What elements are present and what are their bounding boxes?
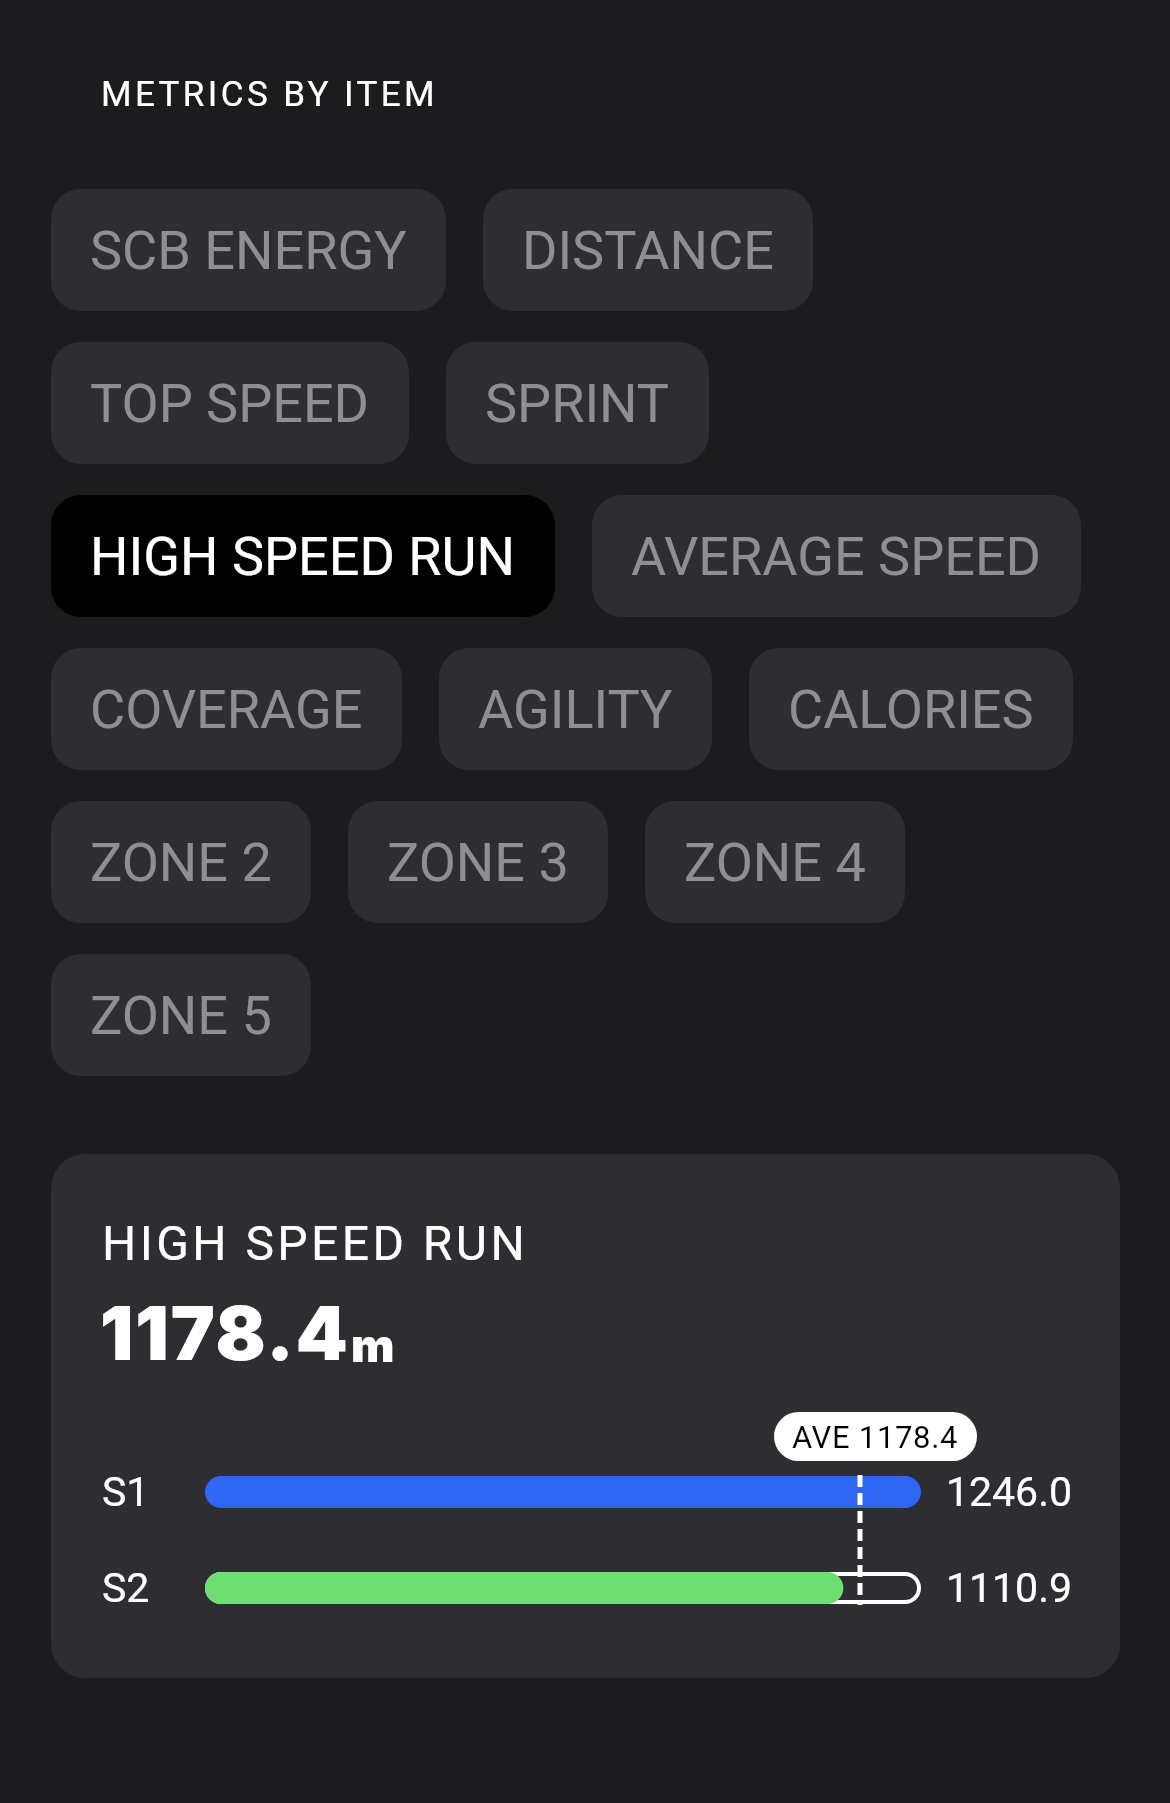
staticText: ZONE 5 <box>90 984 272 1047</box>
button[interactable]: AVE 1178.4 <box>774 1412 977 1461</box>
staticText: SCB ENERGY <box>90 219 407 282</box>
button[interactable]: SPRINT <box>446 342 709 464</box>
button[interactable]: COVERAGE <box>51 648 402 770</box>
button[interactable]: ZONE 3 <box>348 801 608 923</box>
staticText: AVE 1178.4 <box>792 1419 959 1455</box>
button[interactable]: AVERAGE SPEED <box>592 495 1081 617</box>
staticText: ZONE 3 <box>387 831 569 894</box>
button[interactable]: SCB ENERGY <box>51 189 446 311</box>
button[interactable]: DISTANCE <box>483 189 813 311</box>
staticText: AVERAGE SPEED <box>631 525 1042 588</box>
staticText: 1110.9 <box>811 1564 1072 1612</box>
staticText: m <box>351 1317 395 1373</box>
staticText: S1 <box>102 1468 150 1516</box>
button[interactable]: CALORIES <box>749 648 1073 770</box>
button[interactable]: HIGH SPEED RUN <box>51 1154 1120 1678</box>
staticText: HIGH SPEED RUN <box>90 525 516 588</box>
staticText: COVERAGE <box>90 678 363 741</box>
button[interactable]: AGILITY <box>439 648 712 770</box>
staticText: METRICS BY ITEM <box>101 74 438 115</box>
staticText: ZONE 4 <box>684 831 866 894</box>
staticText: S2 <box>102 1564 150 1612</box>
staticText: ZONE 2 <box>90 831 272 894</box>
staticText: 1178.4 <box>100 1288 350 1378</box>
staticText: DISTANCE <box>522 219 774 282</box>
button[interactable]: HIGH SPEED RUN <box>51 495 555 617</box>
staticText: HIGH SPEED RUN <box>102 1215 529 1271</box>
staticText: CALORIES <box>788 678 1034 741</box>
button[interactable]: TOP SPEED <box>51 342 409 464</box>
staticText: SPRINT <box>485 372 670 435</box>
staticText: 1246.0 <box>811 1468 1072 1516</box>
button[interactable]: ZONE 2 <box>51 801 311 923</box>
staticText: TOP SPEED <box>90 372 370 435</box>
button[interactable]: ZONE 4 <box>645 801 905 923</box>
button[interactable]: ZONE 5 <box>51 954 311 1076</box>
staticText: AGILITY <box>478 678 673 741</box>
